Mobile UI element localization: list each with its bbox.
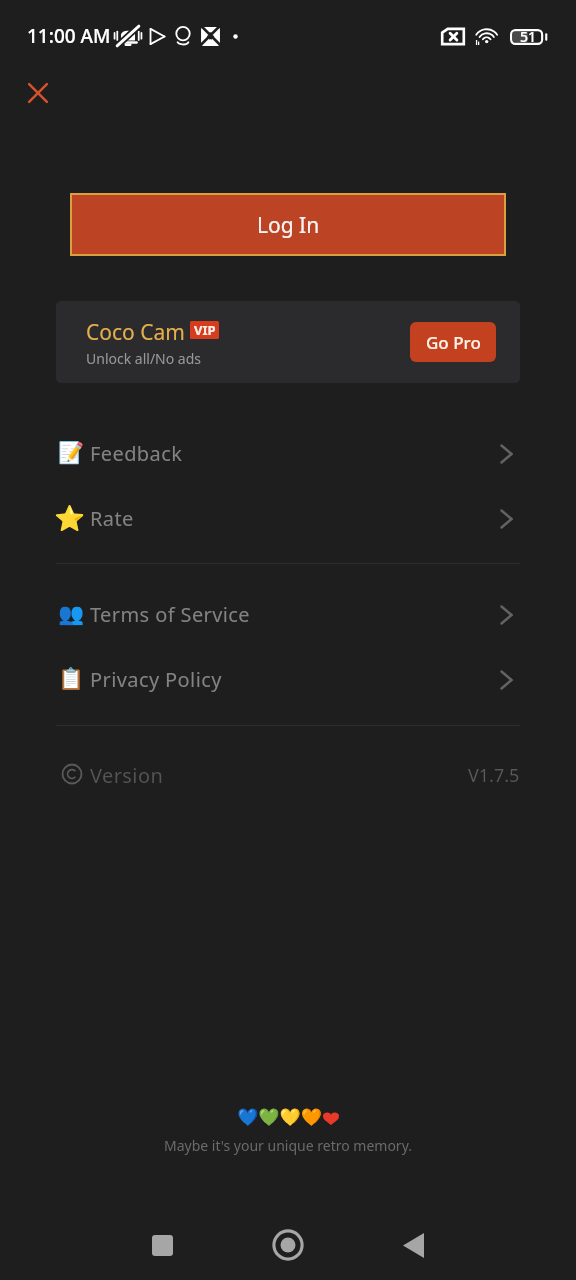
- staticText: 👥: [58, 602, 85, 627]
- staticText: 📝: [58, 441, 85, 466]
- staticText: Rate: [90, 505, 134, 532]
- button[interactable]: Home: [264, 1221, 312, 1269]
- staticText: Go Pro: [426, 331, 481, 354]
- staticText: Log In: [257, 211, 320, 240]
- staticText: 51: [520, 27, 537, 46]
- staticText: V1.7.5: [468, 763, 520, 788]
- button[interactable]: 📋: [0, 647, 576, 712]
- staticText: 📋: [58, 667, 85, 692]
- staticText: Coco Cam: [86, 318, 185, 347]
- button[interactable]: Go Pro: [410, 322, 496, 362]
- button[interactable]: 📝: [0, 421, 576, 486]
- staticText: ⭐: [54, 504, 86, 533]
- button[interactable]: Log In: [70, 193, 506, 256]
- button[interactable]: Close: [14, 69, 62, 117]
- button[interactable]: Back: [389, 1221, 437, 1269]
- staticText: Terms of Service: [90, 601, 251, 628]
- staticText: Maybe it's your unique retro memory.: [164, 1136, 412, 1155]
- staticText: VIP: [194, 321, 216, 339]
- staticText: Privacy Policy: [90, 666, 222, 693]
- button[interactable]: Coco Cam: [56, 301, 520, 383]
- staticText: Version: [90, 762, 164, 789]
- staticText: 11:00 AM: [27, 23, 111, 49]
- button[interactable]: 👥: [0, 582, 576, 647]
- staticText: 💙💚💛🧡: [237, 1107, 322, 1127]
- button[interactable]: Recents: [138, 1221, 186, 1269]
- button[interactable]: ⭐: [0, 486, 576, 551]
- staticText: Unlock all/No ads: [86, 349, 202, 368]
- staticText: Feedback: [90, 440, 183, 467]
